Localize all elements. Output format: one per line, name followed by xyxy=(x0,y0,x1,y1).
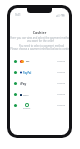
button[interactable]: iPay xyxy=(10,78,69,89)
staticText: 9:41 xyxy=(15,13,21,17)
button[interactable]: MC xyxy=(10,56,69,67)
staticText: Skrill xyxy=(23,93,29,96)
staticText: You need to select a payment method Plea… xyxy=(10,44,69,50)
staticText: change xyxy=(57,82,65,85)
staticText: MC xyxy=(26,60,30,63)
button[interactable]: Skrill xyxy=(10,89,69,100)
staticText: Cashier xyxy=(10,30,69,35)
button[interactable]: PayPal xyxy=(10,67,69,78)
staticText: change xyxy=(57,104,65,107)
staticText: Here you can view and select the payment… xyxy=(10,36,69,42)
staticText: iPay xyxy=(20,82,27,86)
staticText: Greenpay xyxy=(23,107,31,109)
staticText: change xyxy=(57,60,65,63)
staticText: change xyxy=(57,71,65,74)
staticText: change xyxy=(57,93,65,96)
staticText: PayPal xyxy=(23,71,32,74)
button[interactable]: Greenpay xyxy=(10,100,69,111)
